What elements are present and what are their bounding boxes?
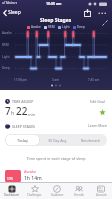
staticText: Time spent in each stage of sleep — [0, 156, 112, 161]
staticText: Light — [2, 55, 10, 59]
staticText: Guidance — [51, 193, 64, 197]
staticText: Today — [17, 138, 29, 143]
staticText: SLEEP STAGES — [12, 124, 36, 129]
button[interactable]: Account — [90, 183, 112, 199]
button[interactable]: Edit Goal — [90, 99, 105, 104]
staticText: 7:45 am — [88, 78, 100, 82]
staticText: 7 — [5, 104, 11, 118]
staticText: Sleep — [8, 9, 21, 16]
staticText: Deep — [2, 66, 10, 70]
staticText: min — [28, 112, 36, 117]
staticText: Dashboard — [4, 193, 19, 197]
staticText: 22 — [16, 104, 28, 118]
staticText: h — [11, 110, 16, 117]
staticText: Sleep Stages — [40, 17, 72, 24]
staticText: 1h 14m — [24, 175, 42, 182]
staticText: Awake — [31, 25, 41, 29]
staticText: ul Telstra ▾ — [2, 1, 17, 5]
button[interactable]: Learn More — [88, 123, 107, 128]
button[interactable] — [98, 12, 107, 15]
staticText: Awake — [2, 31, 12, 35]
staticText: 10% — [7, 177, 13, 181]
button[interactable]: Benchmark — [74, 134, 107, 146]
staticText: Account — [96, 193, 107, 197]
button[interactable]: Guidance — [46, 183, 68, 199]
staticText: TIME ASLEEP — [12, 99, 34, 104]
button[interactable]: Today — [5, 134, 40, 146]
button[interactable]: Challenges — [23, 183, 46, 199]
staticText: REM — [48, 25, 55, 29]
staticText: Awake — [24, 169, 37, 174]
staticText: Light — [62, 25, 70, 29]
button[interactable]: Friends — [68, 183, 90, 199]
staticText: REM — [2, 43, 9, 47]
staticText: 11:08 pm — [14, 78, 28, 82]
button[interactable] — [84, 9, 91, 17]
staticText: Benchmark — [81, 138, 100, 143]
button[interactable]: 30 Day Avg — [40, 134, 74, 146]
staticText: 3 am — [52, 78, 59, 82]
staticText: Challenges — [27, 193, 42, 197]
button[interactable]: Sleep — [3, 8, 21, 17]
staticText: Deep — [77, 25, 85, 29]
staticText: Friends — [74, 193, 84, 197]
staticText: 10:00 am — [46, 1, 62, 6]
button[interactable]: Dashboard — [0, 183, 23, 199]
staticText: 30 Day Avg — [48, 138, 67, 143]
